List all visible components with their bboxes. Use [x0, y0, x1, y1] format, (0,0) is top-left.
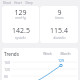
staticText: 80 [4, 74, 8, 78]
staticText: Sleep [25, 1, 33, 5]
staticText: 142.5 [12, 26, 30, 36]
button[interactable]: 129 [2, 6, 39, 43]
staticText: 129 [58, 58, 64, 62]
staticText: systolic [15, 36, 26, 40]
staticText: Week [43, 51, 52, 55]
staticText: Trends [4, 51, 19, 57]
button[interactable]: Week [43, 51, 52, 55]
staticText: diastolic [53, 36, 66, 40]
button[interactable]: Month [60, 51, 71, 55]
staticText: 115.4 [50, 26, 68, 36]
staticText: 129 [14, 8, 27, 18]
staticText: mmHg [15, 16, 26, 20]
button[interactable]: 9 [40, 6, 78, 43]
staticText: 120 [4, 67, 10, 71]
button[interactable]: Sleep [25, 1, 33, 5]
staticText: Month [60, 51, 71, 55]
button[interactable]: Blood [3, 1, 11, 5]
button[interactable]: Heart [14, 1, 22, 5]
staticText: times [55, 16, 64, 20]
staticText: Heart [14, 1, 22, 5]
staticText: 160 [4, 60, 10, 64]
staticText: Blood [3, 1, 11, 5]
staticText: 9 [57, 8, 62, 18]
